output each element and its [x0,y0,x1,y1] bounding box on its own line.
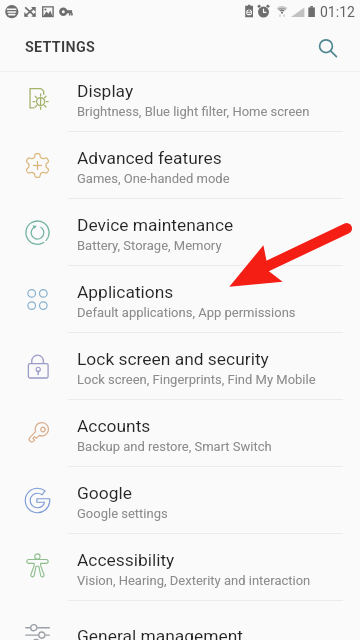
staticText: Brightness, Blue light filter, Home scre… [77,104,310,119]
staticText: 01:12 [320,4,355,20]
staticText: Games, One-handed mode [77,171,230,186]
button[interactable]: Accessibility [0,534,360,601]
button[interactable]: Google [0,467,360,534]
staticText: Google [77,483,132,503]
staticText: Advanced features [77,148,222,168]
staticText: Backup and restore, Smart Switch [77,439,272,454]
staticText: Applications [77,282,174,302]
button[interactable]: Lock screen and security [0,333,360,400]
staticText: General management [77,626,243,640]
staticText: Display [77,81,134,101]
button[interactable]: Advanced features [0,132,360,199]
staticText: Vision, Hearing, Dexterity and interacti… [77,573,311,588]
button[interactable]: Device maintenance [0,199,360,266]
staticText: Lock screen and security [77,349,269,369]
button[interactable]: Applications [0,266,360,333]
button[interactable]: Accounts [0,400,360,467]
staticText: Google settings [77,506,168,521]
staticText: Battery, Storage, Memory [77,238,222,253]
button[interactable]: Display [0,65,360,132]
staticText: Device maintenance [77,215,234,235]
staticText: SETTINGS [25,39,96,56]
staticText: Accessibility [77,550,175,570]
staticText: Lock screen, Fingerprints, Find My Mobil… [77,372,316,387]
button[interactable]: General management [0,601,360,640]
staticText: Default applications, App permissions [77,305,296,320]
button[interactable]: Search [306,26,346,66]
staticText: Accounts [77,416,151,436]
